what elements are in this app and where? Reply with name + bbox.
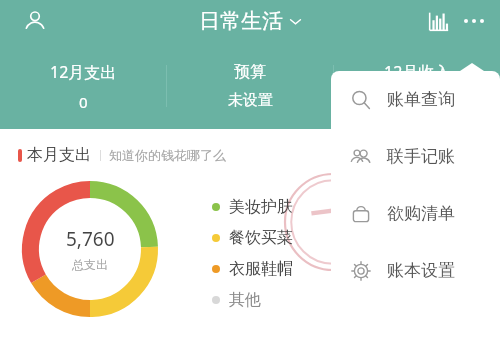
staticText: 0 bbox=[79, 92, 88, 112]
staticText: 联手记账 bbox=[387, 146, 455, 167]
staticText: 12月收入 bbox=[384, 61, 451, 83]
staticText: 知道你的钱花哪了么 bbox=[109, 147, 226, 163]
button[interactable]: 联手记账 bbox=[331, 128, 500, 185]
staticText: 12月支出 bbox=[50, 61, 117, 83]
button[interactable]: 账单查询 bbox=[331, 71, 500, 128]
staticText: 账单查询 bbox=[387, 89, 455, 110]
button[interactable]: 餐饮买菜 bbox=[212, 228, 293, 248]
button[interactable]: 账本设置 bbox=[331, 242, 500, 299]
button[interactable]: 欲购清单 bbox=[331, 185, 500, 242]
staticText: 预算 bbox=[234, 62, 266, 82]
staticText: 账本设置 bbox=[387, 260, 455, 281]
button[interactable]: 其他 bbox=[212, 290, 261, 310]
button[interactable]: 日常生活 bbox=[199, 8, 302, 34]
button[interactable]: 12月支出 bbox=[0, 43, 166, 129]
staticText: 衣服鞋帽 bbox=[229, 259, 293, 279]
staticText: 5,760 bbox=[66, 226, 115, 252]
staticText: 美妆护肤 bbox=[229, 197, 293, 217]
button[interactable]: 12月收入 bbox=[334, 43, 500, 129]
button[interactable]: Statistics chart bbox=[420, 3, 456, 39]
button[interactable]: Profile bbox=[18, 4, 52, 38]
staticText: 1,800 bbox=[398, 92, 437, 112]
staticText: 日常生活 bbox=[199, 8, 283, 34]
staticText: 本月支出 bbox=[27, 145, 91, 165]
staticText: 未设置 bbox=[228, 91, 273, 110]
staticText: 总支出 bbox=[72, 257, 108, 272]
button[interactable]: 美妆护肤 bbox=[212, 197, 293, 217]
staticText: 餐饮买菜 bbox=[229, 228, 293, 248]
staticText: 欲购清单 bbox=[387, 203, 455, 224]
button[interactable]: 衣服鞋帽 bbox=[212, 259, 293, 279]
staticText: 其他 bbox=[229, 290, 261, 310]
button[interactable]: More options bbox=[456, 3, 492, 39]
button[interactable]: 预算 bbox=[167, 43, 333, 129]
